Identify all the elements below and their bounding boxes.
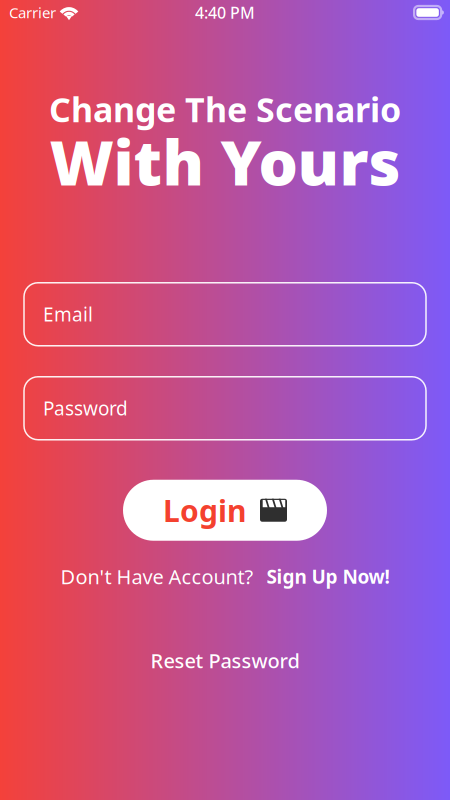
staticText: With Yours: [49, 119, 400, 204]
staticText: Sign Up Now!: [266, 563, 389, 589]
staticText: Login: [163, 490, 247, 531]
staticText: Don't Have Account?: [60, 563, 253, 590]
button[interactable]: Login: [123, 480, 327, 541]
staticText: Change The Scenario: [49, 86, 401, 132]
staticText: Password: [43, 395, 128, 421]
staticText: Reset Password: [150, 647, 299, 674]
button[interactable]: Password: [24, 377, 426, 440]
button[interactable]: Reset Password: [150, 647, 299, 674]
button[interactable]: Email: [24, 283, 426, 346]
staticText: Carrier: [9, 2, 56, 23]
button[interactable]: Don't Have Account?: [60, 563, 389, 590]
staticText: 4:40 PM: [195, 2, 255, 23]
staticText: Email: [43, 301, 93, 327]
